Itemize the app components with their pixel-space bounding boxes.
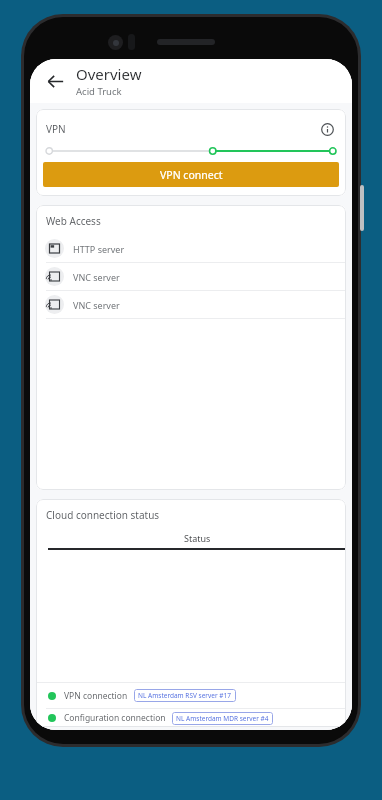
staticText: VNC server xyxy=(73,299,120,311)
button[interactable]: Back xyxy=(40,66,70,96)
staticText: NL Amsterdam RSV server #17 xyxy=(138,691,232,700)
staticText: HTTP server xyxy=(73,243,125,255)
staticText: Web Access xyxy=(46,214,101,228)
staticText: VNC server xyxy=(73,271,120,283)
staticText: VPN xyxy=(46,122,66,136)
button[interactable]: Status xyxy=(48,528,346,550)
staticText: Acid Truck xyxy=(76,85,122,98)
staticText: Overview xyxy=(76,64,142,84)
button[interactable]: VNC server xyxy=(36,291,346,318)
staticText: Status xyxy=(184,532,211,544)
button[interactable]: VPN connection xyxy=(36,683,346,708)
button[interactable]: VNC server xyxy=(36,263,346,290)
staticText: Configuration connection xyxy=(64,712,166,724)
staticText: VPN connect xyxy=(160,168,223,182)
staticText: Cloud connection status xyxy=(46,508,160,522)
button[interactable]: Info xyxy=(316,118,338,140)
staticText: NL Amsterdam MDR server #4 xyxy=(176,714,269,723)
staticText: VPN connection xyxy=(64,690,128,702)
button[interactable]: VPN connect xyxy=(43,162,339,187)
button[interactable]: Configuration connection xyxy=(36,709,346,727)
button[interactable]: HTTP server xyxy=(36,235,346,262)
